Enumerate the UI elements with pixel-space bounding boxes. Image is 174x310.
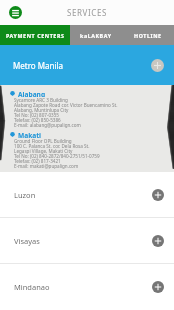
other: Expand Mindanao [152, 281, 164, 293]
staticText: Ground Floor OPL Building [14, 138, 72, 144]
staticText: Alabang [18, 90, 46, 97]
staticText: Tel No: (02) 807-0355 [14, 112, 59, 118]
staticText: Mindanao [14, 282, 50, 292]
staticText: Luzon [14, 190, 36, 200]
button[interactable]: kaLAKBAY [70, 25, 122, 45]
staticText: SERVICES [67, 7, 108, 18]
staticText: Telefax: (02) 850-5386 [14, 117, 61, 123]
staticText: 100 C. Palanca St. cor. Dela Rosa St. [14, 143, 90, 149]
staticText: Visayas [14, 236, 40, 246]
button[interactable]: Visayas [0, 218, 174, 263]
staticText: Makati [18, 131, 42, 138]
button[interactable]: HOTLINE [122, 25, 174, 45]
staticText: Metro Manila [13, 60, 64, 71]
button[interactable]: PAYMENT CENTERS [0, 25, 70, 45]
staticText: Tel No: (02) 840-2872/840-2751/51-0759 [14, 153, 100, 159]
staticText: Telefax: (02) 817-3421 [14, 158, 61, 164]
staticText: Alabang Zapote Road cor. Victor Buencami… [14, 102, 118, 108]
button[interactable]: Mindanao [0, 264, 174, 309]
staticText: Sycamore ARC 3 Building [14, 97, 68, 103]
other: Collapse Metro Manila [151, 59, 164, 72]
staticText: HOTLINE [134, 32, 162, 39]
staticText: PAYMENT CENTERS [6, 32, 65, 39]
staticText: Legaspi Village, Makati City [14, 148, 73, 154]
button[interactable]: Metro Manila [0, 45, 174, 85]
button[interactable]: Open navigation menu [9, 6, 22, 19]
staticText: kaLAKBAY [80, 32, 112, 39]
staticText: E-mail: alabang@pupalign.com [14, 122, 81, 128]
button[interactable]: Luzon [0, 172, 174, 217]
other: Expand Luzon [152, 189, 164, 201]
other: Expand Visayas [152, 235, 164, 247]
staticText: Alabang, Muntinlupa City [14, 107, 69, 113]
staticText: E-mail: makati@pupalign.com [14, 163, 79, 169]
